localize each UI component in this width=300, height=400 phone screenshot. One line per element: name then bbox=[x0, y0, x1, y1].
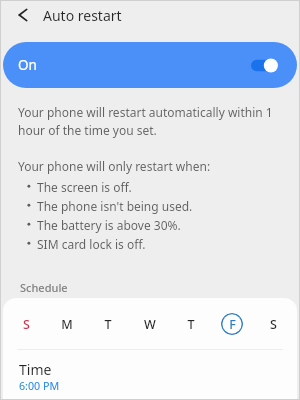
staticText: T bbox=[187, 316, 195, 333]
staticText: SIM card lock is off. bbox=[37, 236, 146, 252]
button[interactable]: S bbox=[262, 313, 284, 335]
button[interactable]: T bbox=[97, 313, 119, 335]
staticText: The battery is above 30%. bbox=[37, 217, 181, 233]
staticText: The phone isn't being used. bbox=[37, 198, 193, 214]
staticText: 6:00 PM bbox=[19, 379, 60, 394]
staticText: Your phone will only restart when: bbox=[18, 158, 211, 174]
staticText: On bbox=[18, 56, 37, 74]
staticText: S bbox=[270, 316, 277, 333]
button[interactable]: S bbox=[15, 313, 37, 335]
button[interactable]: On bbox=[3, 42, 297, 88]
staticText: The screen is off. bbox=[37, 179, 132, 195]
staticText: Your phone will restart automatically wi… bbox=[18, 104, 300, 138]
staticText: Time bbox=[19, 360, 52, 379]
staticText: Auto restart bbox=[43, 6, 122, 25]
staticText: F bbox=[229, 316, 236, 333]
staticText: Schedule bbox=[20, 280, 68, 295]
button[interactable]: M bbox=[56, 313, 78, 335]
button[interactable]: T bbox=[180, 313, 202, 335]
button[interactable]: F bbox=[221, 313, 243, 335]
staticText: S bbox=[23, 316, 30, 333]
staticText: W bbox=[144, 316, 156, 333]
staticText: M bbox=[61, 316, 73, 333]
button[interactable]: Time bbox=[3, 350, 297, 394]
button[interactable]: W bbox=[139, 313, 161, 335]
staticText: T bbox=[104, 316, 112, 333]
button[interactable]: Back bbox=[9, 0, 37, 29]
